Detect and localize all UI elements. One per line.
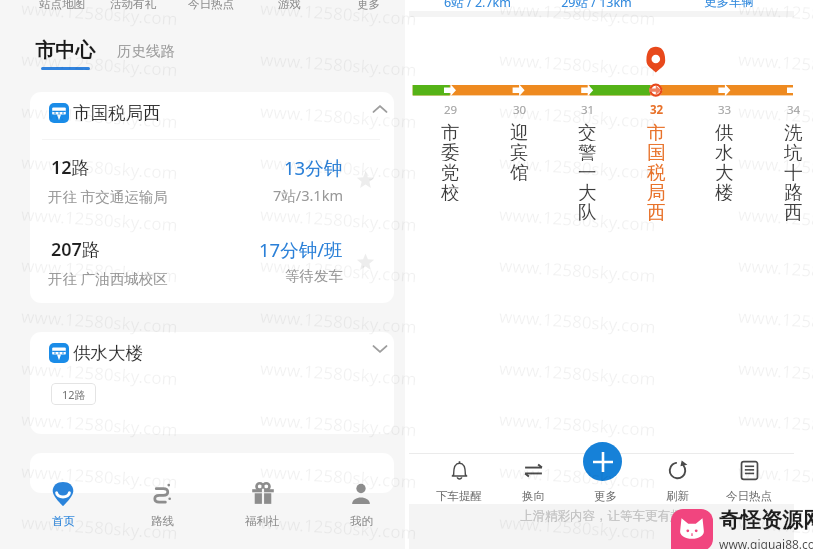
- button[interactable]: 刷新: [637, 455, 717, 503]
- staticText: 局: [647, 181, 666, 201]
- staticText: 活动有礼: [110, 0, 156, 11]
- button[interactable]: 31: [561, 102, 613, 221]
- button[interactable]: 我的: [317, 473, 405, 529]
- button[interactable]: 活动有礼: [93, 0, 173, 13]
- staticText: 上滑精彩内容，让等车更有趣: [520, 508, 683, 524]
- staticText: 开往 市交通运输局: [48, 186, 168, 206]
- staticText: www.12580sky.com: [498, 357, 657, 390]
- button[interactable]: 更多车辆: [679, 0, 779, 12]
- staticText: 市国税局西: [73, 102, 161, 124]
- staticText: 队: [578, 201, 597, 221]
- button[interactable]: 34: [767, 102, 813, 221]
- staticText: 7站/3.1km: [273, 185, 343, 205]
- staticText: www.12580sky.com: [498, 151, 657, 184]
- staticText: 国: [647, 141, 666, 161]
- staticText: 税: [647, 161, 666, 181]
- staticText: 楼: [715, 181, 734, 201]
- button[interactable]: 207路: [30, 229, 394, 303]
- staticText: 宾: [510, 141, 529, 161]
- staticText: 委: [441, 141, 460, 161]
- staticText: 警: [578, 141, 597, 161]
- button[interactable]: 今日热点: [709, 455, 789, 503]
- staticText: 31: [581, 102, 595, 118]
- staticText: 供水大楼: [73, 342, 143, 364]
- staticText: www.12580sky.com: [737, 0, 813, 30]
- button[interactable]: 站点地图: [22, 0, 102, 13]
- button[interactable]: 福利社: [218, 473, 306, 529]
- button[interactable]: 更多: [328, 0, 408, 13]
- staticText: 30: [513, 102, 527, 118]
- button[interactable]: 下车提醒: [419, 455, 499, 503]
- button[interactable]: 12路: [51, 383, 96, 405]
- staticText: 33: [718, 102, 732, 118]
- button[interactable]: 今日热点: [171, 0, 251, 13]
- staticText: www.12580sky.com: [20, 254, 179, 287]
- button[interactable]: 更多: [565, 455, 645, 503]
- button[interactable]: 路线: [118, 473, 206, 529]
- staticText: 首页: [52, 514, 75, 528]
- button[interactable]: 29站 / 13km: [546, 0, 646, 12]
- staticText: www.12580sky.com: [737, 203, 813, 236]
- button[interactable]: 历史线路: [117, 42, 175, 60]
- staticText: 34: [787, 102, 801, 118]
- staticText: www.12580sky.com: [498, 460, 657, 493]
- staticText: 迎: [510, 121, 529, 141]
- staticText: 我的: [350, 514, 373, 528]
- staticText: www.12580sky.com: [259, 100, 418, 133]
- button[interactable]: 供水大楼: [30, 332, 394, 378]
- staticText: www.12580sky.com: [259, 511, 418, 544]
- button[interactable]: 换向: [493, 455, 573, 503]
- staticText: www.12580sky.com: [20, 460, 179, 493]
- staticText: 更多: [594, 489, 617, 503]
- button[interactable]: 首页: [19, 473, 107, 529]
- staticText: www.12580sky.com: [259, 460, 418, 493]
- staticText: www.12580sky.com: [498, 511, 657, 544]
- button[interactable]: 游戏: [249, 0, 329, 13]
- staticText: 校: [441, 181, 460, 201]
- button[interactable]: 更多: [583, 442, 622, 481]
- staticText: 市: [441, 121, 460, 141]
- button[interactable]: 30: [493, 102, 545, 181]
- staticText: www.12580sky.com: [20, 408, 179, 441]
- staticText: 换向: [522, 489, 545, 503]
- staticText: 6站 / 2.7km: [444, 0, 511, 11]
- staticText: www.12580sky.com: [737, 460, 813, 493]
- button[interactable]: 6站 / 2.7km: [427, 0, 527, 12]
- staticText: www.qiguai88.com: [719, 536, 813, 549]
- staticText: 十: [784, 161, 803, 181]
- button[interactable]: 12路: [30, 147, 394, 229]
- staticText: www.12580sky.com: [498, 0, 657, 30]
- button[interactable]: 32: [630, 102, 682, 221]
- staticText: 17分钟/班: [259, 237, 343, 262]
- staticText: www.12580sky.com: [259, 305, 418, 338]
- staticText: www.12580sky.com: [20, 203, 179, 236]
- staticText: 党: [441, 161, 460, 181]
- staticText: 馆: [510, 161, 529, 181]
- staticText: 今日热点: [188, 0, 234, 11]
- staticText: 大: [715, 161, 734, 181]
- staticText: 水: [715, 141, 734, 161]
- button[interactable]: 市国税局西: [30, 92, 394, 138]
- staticText: 供: [715, 121, 734, 141]
- staticText: www.12580sky.com: [259, 254, 418, 287]
- staticText: www.12580sky.com: [20, 48, 179, 81]
- staticText: 29站 / 13km: [561, 0, 632, 11]
- staticText: 更多: [357, 0, 380, 11]
- staticText: www.12580sky.com: [498, 203, 657, 236]
- staticText: www.12580sky.com: [259, 0, 418, 30]
- button[interactable]: 33: [698, 102, 750, 201]
- staticText: 历史线路: [117, 42, 175, 60]
- staticText: 29: [444, 102, 458, 118]
- staticText: 交: [578, 121, 597, 141]
- button[interactable]: 29: [424, 102, 476, 201]
- staticText: 207路: [51, 237, 100, 262]
- staticText: 游戏: [278, 0, 301, 11]
- staticText: www.12580sky.com: [259, 48, 418, 81]
- staticText: www.12580sky.com: [498, 100, 657, 133]
- staticText: www.12580sky.com: [737, 511, 813, 544]
- button[interactable]: 市中心: [35, 38, 95, 63]
